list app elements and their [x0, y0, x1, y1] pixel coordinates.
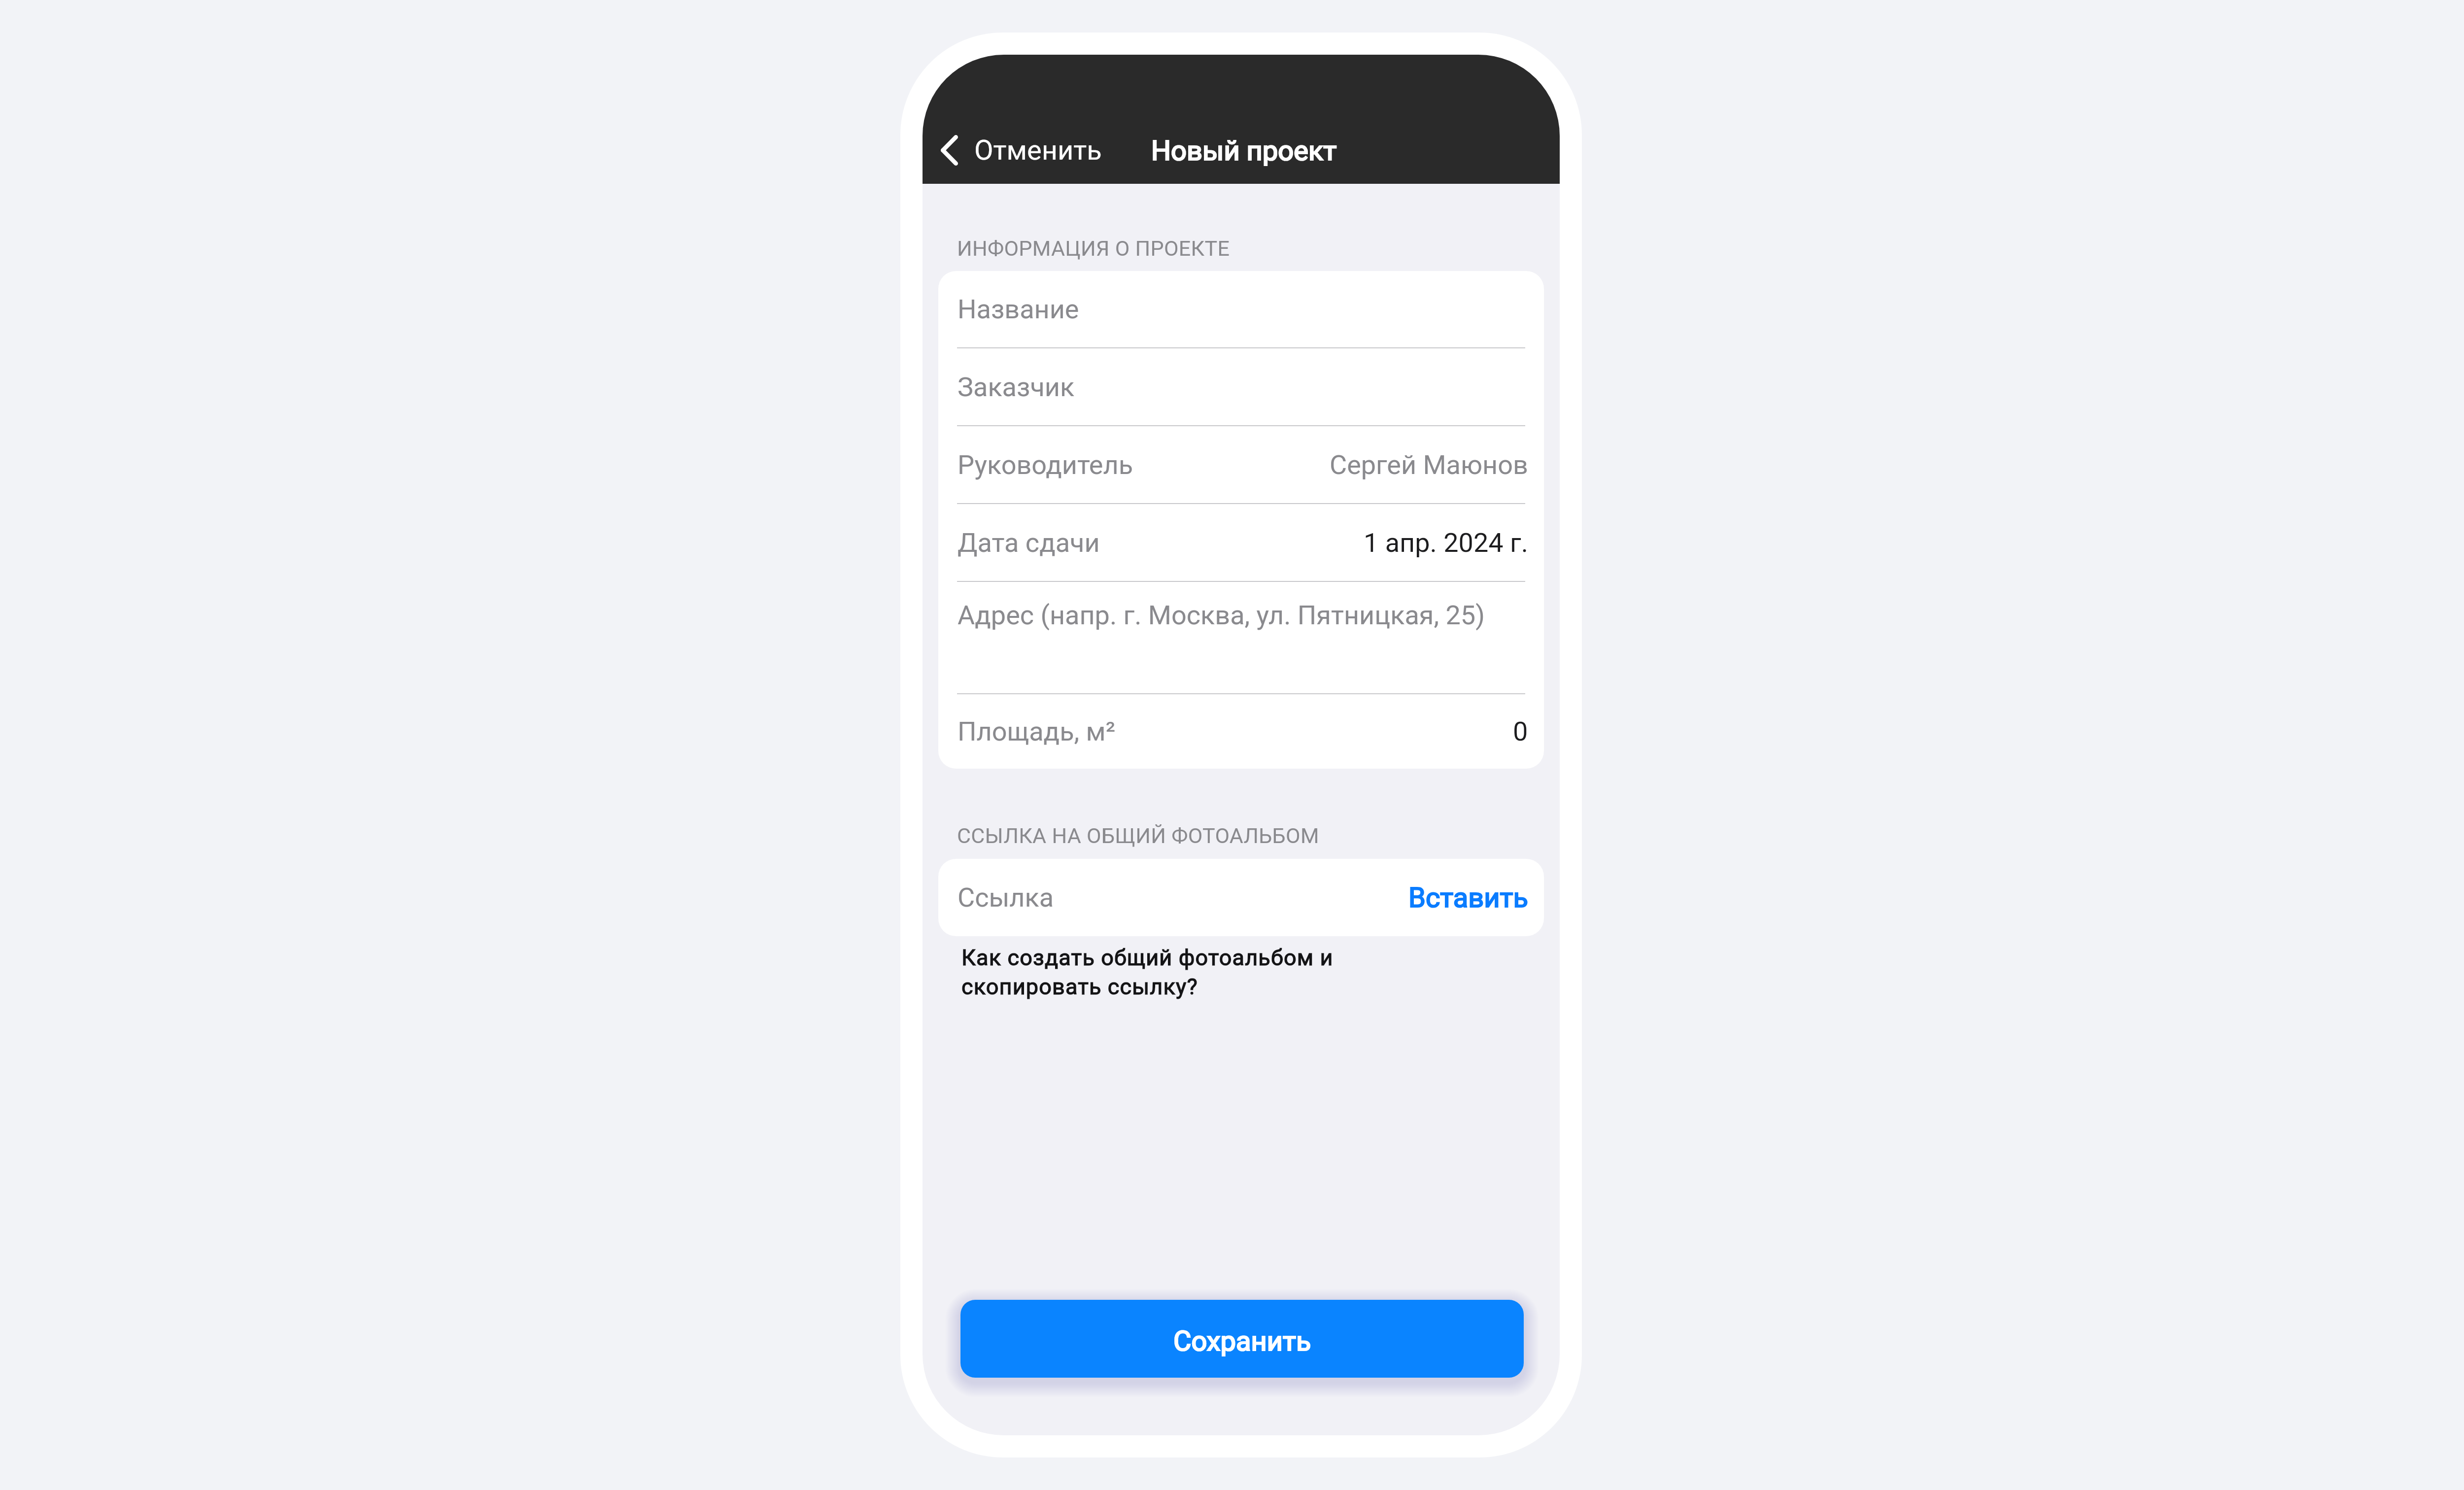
button[interactable]: Назад [936, 131, 1111, 169]
button[interactable]: Заказчик [938, 348, 1544, 425]
staticText: 0 [1513, 716, 1528, 747]
staticText: Сергей Маюнов [1330, 449, 1528, 480]
staticText: Вставить [1408, 881, 1528, 914]
staticText: Площадь, м² [958, 716, 1116, 747]
staticText: Ссылка [958, 882, 1408, 913]
button[interactable]: Адрес (напр. г. Москва, ул. Пятницкая, 2… [938, 582, 1544, 693]
button[interactable]: Руководитель [938, 426, 1544, 503]
staticText: Заказчик [958, 372, 1075, 403]
staticText: Название [958, 294, 1079, 325]
staticText: 1 апр. 2024 г. [1364, 527, 1528, 558]
staticText: Новый проект [1151, 135, 1337, 167]
button[interactable]: Дата сдачи [938, 504, 1544, 581]
staticText: Сохранить [1173, 1325, 1311, 1357]
staticText: Сохранить [1173, 1325, 1311, 1357]
button[interactable]: Как создать общий фотоальбом и скопирова… [961, 942, 1334, 1000]
staticText: Руководитель [958, 449, 1133, 480]
staticText: Адрес (напр. г. Москва, ул. Пятницкая, 2… [958, 600, 1485, 631]
button[interactable]: Сохранить [960, 1300, 1524, 1378]
staticText: Отменить [974, 134, 1102, 167]
staticText: ИНФОРМАЦИЯ О ПРОЕКТЕ [957, 236, 1230, 261]
button[interactable]: Название [938, 271, 1544, 347]
button[interactable]: Площадь, м² [938, 694, 1544, 769]
other: Назад [941, 135, 958, 166]
staticText: Дата сдачи [958, 527, 1100, 558]
staticText: ССЫЛКА НА ОБЩИЙ ФОТОАЛЬБОМ [957, 823, 1319, 848]
staticText: Вставить [1408, 881, 1528, 914]
button[interactable]: Вставить [1408, 881, 1528, 914]
staticText: Новый проект [1151, 135, 1337, 167]
